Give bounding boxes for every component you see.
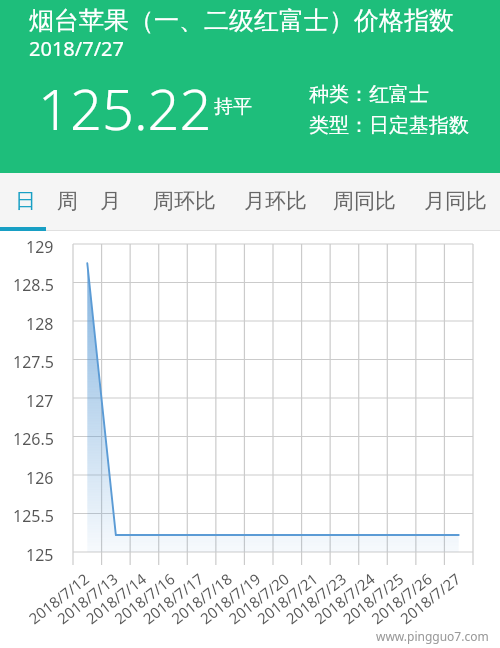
button[interactable]: 月环比 — [235, 173, 315, 228]
staticText: 月环比 — [244, 188, 307, 214]
button[interactable]: 周 — [45, 173, 89, 228]
staticText: 烟台苹果（一、二级红富士）价格指数 — [29, 5, 454, 36]
staticText: 月 — [100, 188, 121, 214]
staticText: 类型：日定基指数 — [309, 113, 469, 138]
staticText: 种类：红富士 — [309, 82, 429, 107]
staticText: 月同比 — [424, 188, 487, 214]
staticText: 125.22 — [38, 70, 212, 146]
staticText: 持平 — [214, 95, 252, 119]
staticText: 周环比 — [153, 188, 216, 214]
staticText: 周同比 — [333, 188, 396, 214]
button[interactable]: 周环比 — [144, 173, 224, 228]
staticText: 日 — [15, 188, 36, 214]
staticText: 2018/7/27 — [29, 35, 124, 62]
button[interactable]: 月 — [88, 173, 132, 228]
button[interactable]: 周同比 — [324, 173, 404, 228]
staticText: 周 — [57, 188, 78, 214]
button[interactable]: 月同比 — [415, 173, 495, 228]
button[interactable]: 日 — [3, 173, 47, 228]
